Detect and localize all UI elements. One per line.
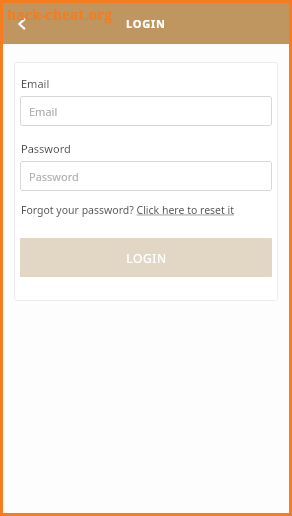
staticText: Email — [21, 76, 50, 91]
staticText: hack-cheat.org — [7, 5, 113, 24]
staticText: Forgot your password? Click here to rese… — [21, 203, 235, 217]
staticText: LOGIN — [126, 250, 167, 266]
staticText: Password — [29, 169, 79, 184]
button[interactable]: Email — [20, 96, 272, 126]
staticText: Password — [21, 141, 71, 156]
button[interactable]: Password — [20, 161, 272, 191]
staticText: LOGIN — [126, 16, 166, 31]
button[interactable]: Back — [7, 9, 37, 39]
staticText: Email — [29, 104, 58, 119]
button[interactable]: LOGIN — [20, 238, 272, 277]
button[interactable]: Forgot your password? Click here to rese… — [20, 202, 272, 218]
